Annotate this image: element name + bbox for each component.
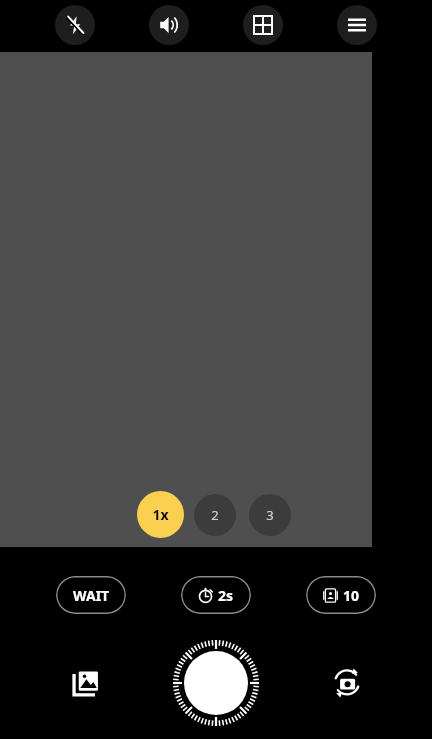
staticText: 3	[266, 506, 274, 524]
button[interactable]: Grid	[243, 5, 283, 45]
button[interactable]: 10	[306, 576, 376, 614]
staticText: 1x	[152, 505, 169, 524]
button[interactable]: Shutter	[172, 639, 260, 727]
button[interactable]: Sound on	[149, 5, 189, 45]
button[interactable]: 2s	[181, 576, 251, 614]
staticText: WAIT	[73, 586, 110, 605]
button[interactable]: Gallery	[62, 659, 110, 707]
staticText: 10	[343, 586, 360, 605]
button[interactable]: 3	[249, 494, 291, 536]
button[interactable]: 2	[194, 494, 236, 536]
button[interactable]: Menu	[337, 5, 377, 45]
button[interactable]: Switch camera	[323, 659, 371, 707]
button[interactable]: 1x	[137, 491, 184, 538]
button[interactable]: Flash off	[55, 5, 95, 45]
button[interactable]: WAIT	[56, 576, 126, 614]
staticText: 2	[211, 506, 219, 524]
staticText: 2s	[218, 586, 234, 605]
